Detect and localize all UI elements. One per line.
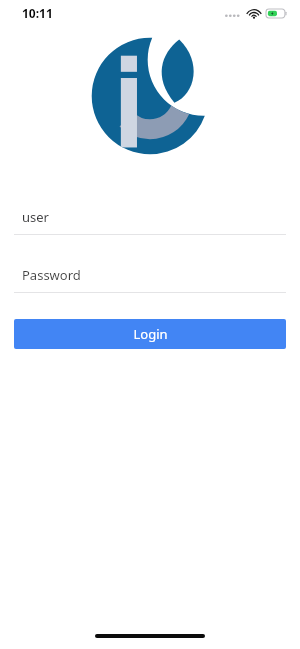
button[interactable]: Login <box>14 319 286 349</box>
staticText: user <box>22 208 49 226</box>
staticText: Password <box>22 266 81 284</box>
other: App logo <box>88 34 212 158</box>
button[interactable]: Password <box>0 264 300 293</box>
staticText: Login <box>133 325 168 343</box>
staticText: 10:11 <box>22 5 53 21</box>
button[interactable]: user <box>0 206 300 235</box>
